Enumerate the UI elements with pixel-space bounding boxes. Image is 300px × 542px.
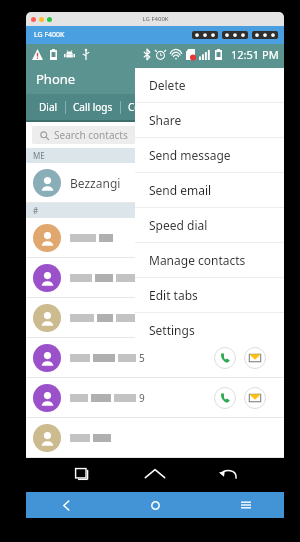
button[interactable]: Back [211,458,245,488]
button[interactable]: 5 [26,338,284,378]
button[interactable]: Share [135,103,284,137]
staticText: Dial [39,100,58,114]
button[interactable] [26,218,284,258]
button[interactable]: Send email [135,173,284,207]
button[interactable] [26,258,284,298]
staticText: Search contacts [54,128,128,142]
button[interactable]: Search contacts [32,126,278,144]
button[interactable]: 9 [26,378,284,418]
button[interactable]: Contacts [121,97,176,117]
button[interactable]: Dial [32,97,65,117]
staticText: Speed dial [149,217,208,233]
button[interactable]: Message [243,386,267,410]
button[interactable]: Bezzangi [26,163,284,203]
staticText: Settings [149,322,195,338]
staticText: Delete [149,77,186,93]
button[interactable]: Call [213,346,237,370]
staticText: Bezzangi [70,175,121,191]
button[interactable]: More options [258,66,284,92]
staticText: 12:51 PM [231,47,279,62]
staticText: LG F400K [142,15,169,23]
button[interactable]: 5 [26,298,284,338]
button[interactable]: Manage contacts [135,243,284,277]
staticText: Edit tabs [149,287,198,303]
button[interactable]: Message [243,346,267,370]
staticText: Phone [36,70,76,88]
button[interactable]: Edit tabs [135,278,284,312]
staticText: Send message [149,147,231,163]
staticText: LG F400K [34,30,65,40]
button[interactable]: Settings [135,313,284,347]
button[interactable]: Back [56,495,76,515]
button[interactable]: Dialpad [228,64,258,94]
button[interactable]: Home [138,458,172,488]
button[interactable]: Delete [135,68,284,102]
staticText: # [33,205,39,216]
staticText: 5 [141,311,147,325]
staticText: Share [149,112,182,128]
staticText: Call logs [73,100,113,114]
staticText: ME [33,150,45,161]
staticText: Send email [149,182,212,198]
button[interactable]: Speed dial [135,208,284,242]
button[interactable]: Menu [236,495,256,515]
staticText: Contacts [128,100,169,114]
staticText: Manage contacts [149,252,246,268]
button[interactable]: Call [213,386,237,410]
button[interactable]: Send message [135,138,284,172]
button[interactable]: Call logs [66,97,120,117]
button[interactable]: Recents [65,458,99,488]
button[interactable] [26,418,284,458]
staticText: 5 [139,351,145,365]
staticText: 9 [139,391,145,405]
button[interactable]: Home [145,495,165,515]
